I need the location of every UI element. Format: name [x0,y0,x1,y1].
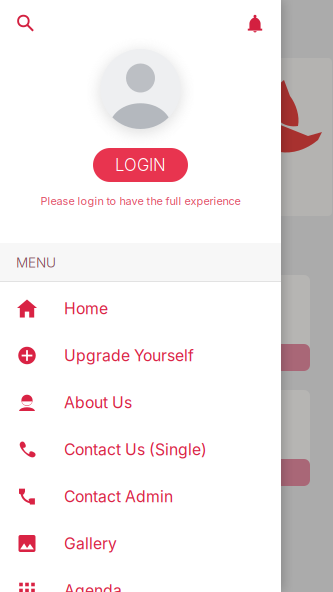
staticText: Gallery [64,534,117,553]
staticText: Please login to have the full experience [40,194,240,208]
button[interactable]: Contact Admin [0,473,281,520]
staticText: Contact Us (Single) [64,440,207,459]
staticText: Home [64,299,108,318]
staticText: Agenda [64,581,122,592]
staticText: LOGIN [115,155,166,175]
button[interactable]: LOGIN [93,148,188,182]
button[interactable]: Contact Us (Single) [0,426,281,473]
staticText: About Us [64,393,132,412]
staticText: Contact Admin [64,487,173,506]
button[interactable]: Gallery [0,520,281,567]
button[interactable]: Agenda [0,567,281,592]
button[interactable]: Notifications [238,7,272,41]
button[interactable]: Search [9,7,43,41]
button[interactable]: Upgrade Yourself [0,332,281,379]
staticText: MENU [16,254,56,271]
button[interactable]: Home [0,285,281,332]
staticText: Upgrade Yourself [64,346,194,365]
button[interactable]: About Us [0,379,281,426]
